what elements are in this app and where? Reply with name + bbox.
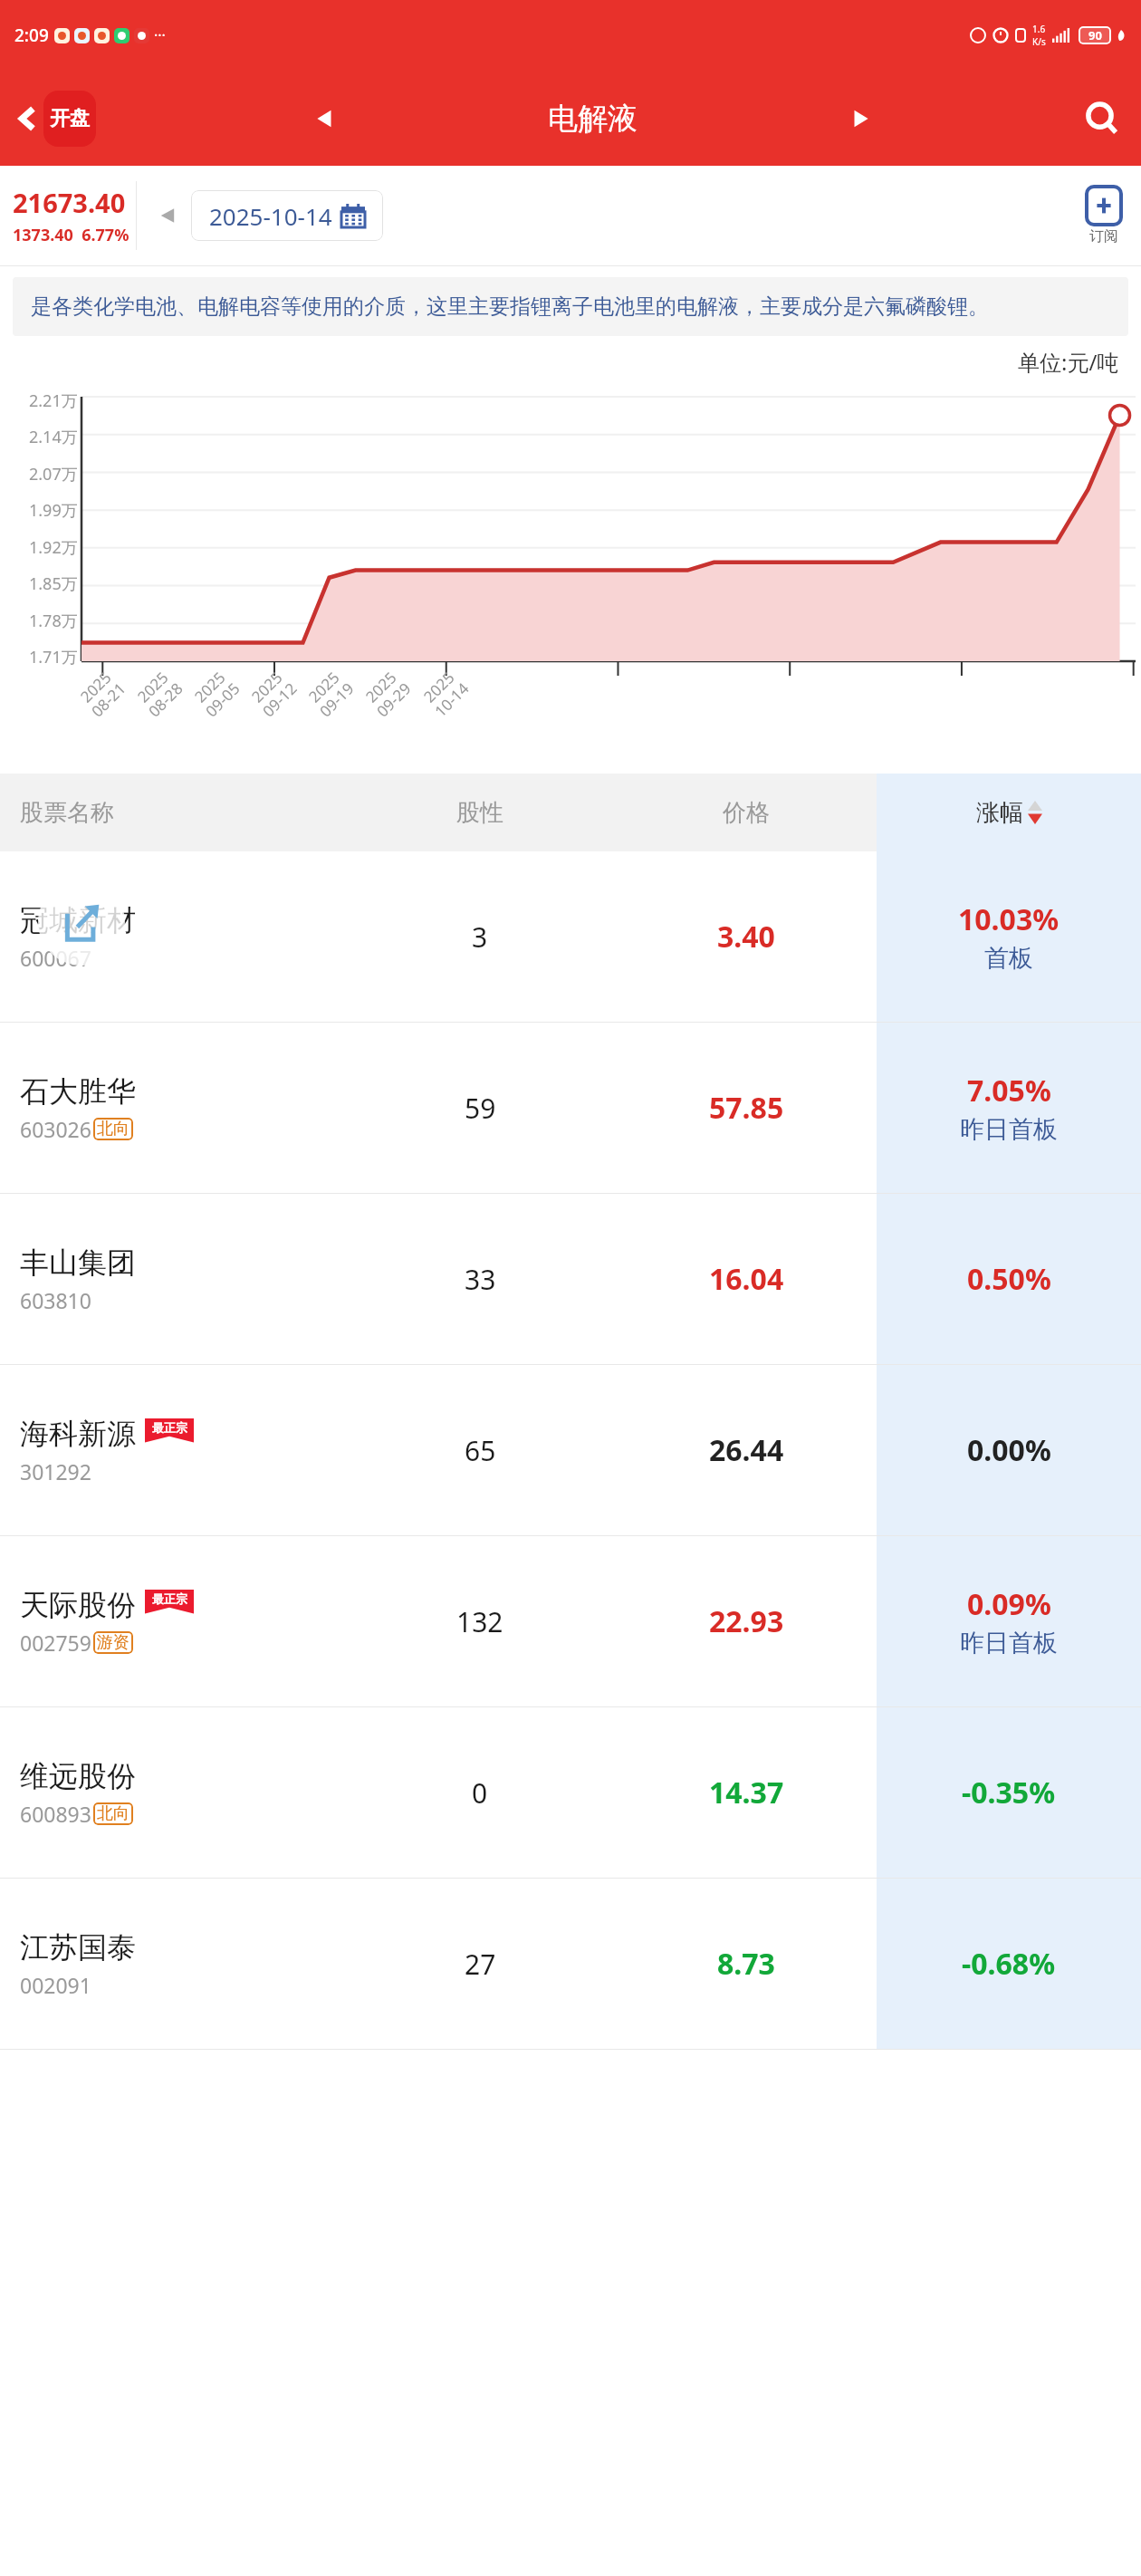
staticText: 2.14万 <box>29 426 78 448</box>
button[interactable]: Search <box>1083 100 1121 138</box>
staticText: 股票名称 <box>20 798 114 828</box>
staticText: 90 <box>1088 27 1102 43</box>
staticText: 33 <box>465 1261 496 1298</box>
staticText: 江苏国泰 <box>20 1929 136 1966</box>
staticText: 002091 <box>20 1971 91 1999</box>
staticText: 北向 <box>97 1119 129 1139</box>
staticText: 132 <box>456 1603 503 1640</box>
staticText: 0.09% <box>967 1584 1051 1624</box>
staticText: 海科新源 <box>20 1416 136 1452</box>
button[interactable]: 石大胜华 <box>0 1023 1141 1193</box>
staticText: 2025 09-29 <box>359 665 415 722</box>
staticText: 0.50% <box>967 1259 1051 1299</box>
staticText: 股性 <box>456 798 503 828</box>
staticText: 600067 <box>20 944 91 972</box>
staticText: 是各类化学电池、电解电容等使用的介质，这里主要指锂离子电池里的电解液，主要成分是… <box>31 293 989 320</box>
staticText: 2025 08-28 <box>131 665 187 722</box>
staticText: 27 <box>465 1946 496 1983</box>
staticText: 维远股份 <box>20 1758 136 1794</box>
button[interactable]: 江苏国泰 <box>0 1879 1141 2049</box>
staticText: 603810 <box>20 1286 91 1314</box>
staticText: 0.00% <box>967 1430 1051 1470</box>
other: Back <box>13 103 43 134</box>
staticText: 石大胜华 <box>20 1073 136 1110</box>
staticText: 16.04 <box>709 1259 784 1299</box>
staticText: 2025 09-05 <box>188 665 244 722</box>
staticText: 电解液 <box>548 100 638 138</box>
button[interactable]: 冠城新材 <box>0 851 1141 1022</box>
button[interactable]: Share <box>38 879 125 966</box>
staticText: 7.05% <box>967 1071 1051 1110</box>
staticText: 2025 10-14 <box>417 665 473 722</box>
staticText: 57.85 <box>709 1088 784 1128</box>
staticText: 65 <box>465 1432 496 1469</box>
staticText: 301292 <box>20 1457 91 1485</box>
staticText: 价格 <box>723 798 770 828</box>
staticText: 1.71万 <box>29 646 78 668</box>
staticText: 天际股份 <box>20 1587 136 1623</box>
staticText: 2:09 <box>14 24 49 47</box>
button[interactable]: 订阅 <box>1087 187 1141 245</box>
staticText: 8.73 <box>717 1944 775 1984</box>
staticText: 北向 <box>97 1803 129 1824</box>
staticText: 昨日首板 <box>960 1628 1058 1658</box>
button[interactable]: 2025-10-14 <box>191 190 383 241</box>
staticText: 2.21万 <box>29 389 78 412</box>
staticText: 603026 <box>20 1115 91 1143</box>
button[interactable]: 涨幅 <box>877 774 1141 851</box>
button[interactable]: 维远股份 <box>0 1707 1141 1878</box>
staticText: 1.85万 <box>29 572 78 595</box>
staticText: ··· <box>154 25 166 45</box>
button[interactable]: Previous day <box>157 205 178 226</box>
staticText: 0 <box>472 1774 488 1812</box>
staticText: 2025 09-19 <box>302 665 358 722</box>
staticText: 单位:元/吨 <box>1018 347 1119 377</box>
staticText: 昨日首板 <box>960 1114 1058 1145</box>
staticText: 最正宗 <box>152 1591 187 1606</box>
staticText: 14.37 <box>709 1773 784 1812</box>
button[interactable]: Next <box>844 102 877 135</box>
staticText: 21673.40 <box>13 185 126 220</box>
staticText: 600893 <box>20 1800 91 1828</box>
staticText: 冠城新材 <box>20 902 136 938</box>
staticText: 1.92万 <box>29 536 78 559</box>
staticText: 002759 <box>20 1629 91 1657</box>
staticText: 1373.40 6.77% <box>13 224 129 246</box>
other: Search <box>1083 100 1121 138</box>
staticText: -0.68% <box>962 1944 1056 1984</box>
staticText: 59 <box>465 1090 496 1127</box>
staticText: 1.6 <box>1032 23 1046 35</box>
button[interactable]: 海科新源 <box>0 1365 1141 1535</box>
staticText: 丰山集团 <box>20 1245 136 1281</box>
staticText: -0.35% <box>962 1773 1056 1812</box>
staticText: K/s <box>1032 35 1046 48</box>
staticText: 2025-10-14 <box>209 200 332 232</box>
staticText: 2025 08-21 <box>74 665 130 722</box>
staticText: 1.78万 <box>29 610 78 632</box>
staticText: 涨幅 <box>976 798 1023 828</box>
staticText: 10.03% <box>958 899 1059 939</box>
staticText: 3 <box>472 918 488 956</box>
button[interactable]: Previous <box>309 102 341 135</box>
staticText: 开盘 <box>50 106 90 131</box>
staticText: 游资 <box>97 1632 129 1653</box>
staticText: 最正宗 <box>152 1420 187 1435</box>
staticText: 22.93 <box>709 1601 784 1641</box>
button[interactable]: Back <box>0 91 101 147</box>
staticText: 2.07万 <box>29 463 78 485</box>
staticText: 首板 <box>984 943 1033 974</box>
staticText: 26.44 <box>709 1430 784 1470</box>
staticText: 1.99万 <box>29 499 78 522</box>
button[interactable]: 天际股份 <box>0 1536 1141 1706</box>
staticText: 3.40 <box>717 917 775 956</box>
staticText: 订阅 <box>1089 227 1118 245</box>
staticText: 2025 09-12 <box>245 665 301 722</box>
button[interactable]: 丰山集团 <box>0 1194 1141 1364</box>
